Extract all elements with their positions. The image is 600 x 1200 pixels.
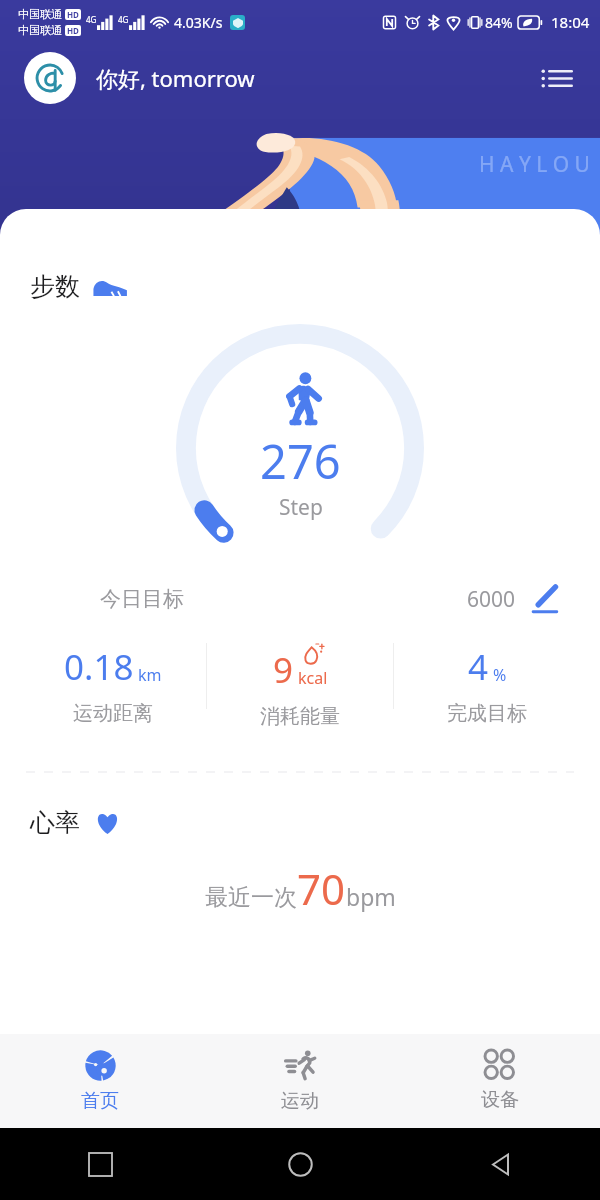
staticText: Step — [279, 493, 323, 522]
button[interactable]: 运动 — [200, 1034, 400, 1128]
staticText: 6000 — [467, 585, 516, 614]
staticText: 4G — [86, 14, 97, 25]
staticText: 70 — [297, 860, 346, 917]
staticText: 84% — [485, 13, 513, 32]
button[interactable]: Edit goal — [467, 583, 560, 615]
button[interactable]: Profile — [24, 52, 76, 104]
button[interactable]: 0.18 — [20, 643, 206, 726]
staticText: 18:04 — [551, 12, 590, 32]
staticText: HD — [67, 25, 79, 36]
staticText: 276 — [260, 429, 341, 493]
button[interactable]: 设备 — [400, 1034, 600, 1128]
button[interactable]: 4 — [394, 643, 580, 726]
button[interactable]: Menu — [534, 55, 580, 101]
staticText: bpm — [346, 881, 396, 912]
button[interactable]: Back — [400, 1128, 600, 1200]
staticText: % — [493, 664, 507, 686]
staticText: kcal — [298, 667, 328, 689]
staticText: 0.18 — [64, 643, 134, 691]
staticText: 设备 — [481, 1088, 519, 1112]
staticText: 中国联通 — [18, 23, 62, 37]
staticText: 步数 — [30, 271, 80, 302]
staticText: 首页 — [81, 1089, 119, 1113]
staticText: 消耗能量 — [260, 704, 340, 729]
staticText: H A Y L O U — [479, 150, 590, 179]
staticText: 9 — [273, 646, 294, 694]
button[interactable]: 9 — [207, 643, 393, 729]
staticText: 运动 — [281, 1089, 319, 1113]
staticText: 运动距离 — [73, 701, 153, 726]
button[interactable]: Recents — [0, 1128, 200, 1200]
staticText: 完成目标 — [447, 701, 527, 726]
button[interactable]: 首页 — [0, 1034, 200, 1128]
staticText: 心率 — [30, 807, 80, 838]
staticText: 4G — [118, 14, 129, 25]
staticText: 今日目标 — [100, 586, 184, 612]
button[interactable]: Home — [200, 1128, 400, 1200]
staticText: 最近一次 — [205, 883, 297, 912]
staticText: km — [138, 664, 162, 686]
staticText: 4.03K/s — [174, 13, 223, 32]
staticText: 你好, tomorrow — [96, 63, 255, 93]
staticText: HD — [67, 9, 79, 20]
staticText: 中国联通 — [18, 7, 62, 21]
staticText: 4 — [468, 643, 489, 691]
